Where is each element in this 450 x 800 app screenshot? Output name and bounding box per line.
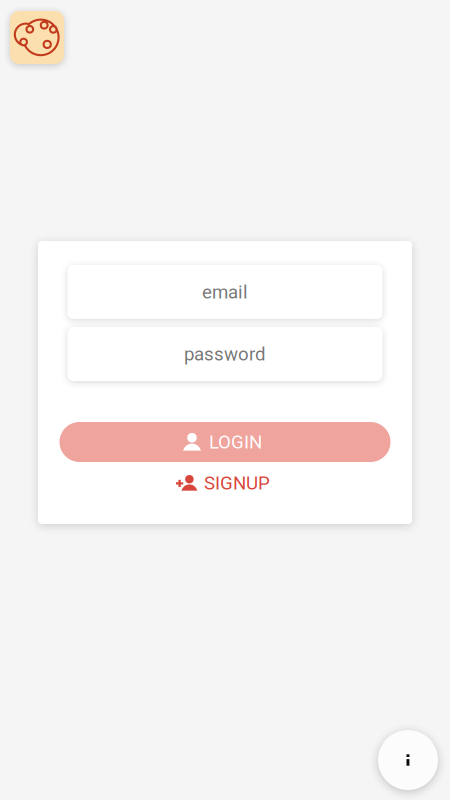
staticText: LOGIN xyxy=(209,431,262,453)
button[interactable]: LOGIN xyxy=(59,422,390,462)
button[interactable]: email xyxy=(67,265,382,319)
button[interactable]: SIGNUP xyxy=(176,472,274,494)
button[interactable]: password xyxy=(67,327,382,381)
button[interactable]: Palette app xyxy=(10,11,64,64)
staticText: password xyxy=(184,343,266,365)
button[interactable]: Info xyxy=(378,730,438,790)
staticText: SIGNUP xyxy=(204,472,270,494)
staticText: email xyxy=(202,281,248,303)
